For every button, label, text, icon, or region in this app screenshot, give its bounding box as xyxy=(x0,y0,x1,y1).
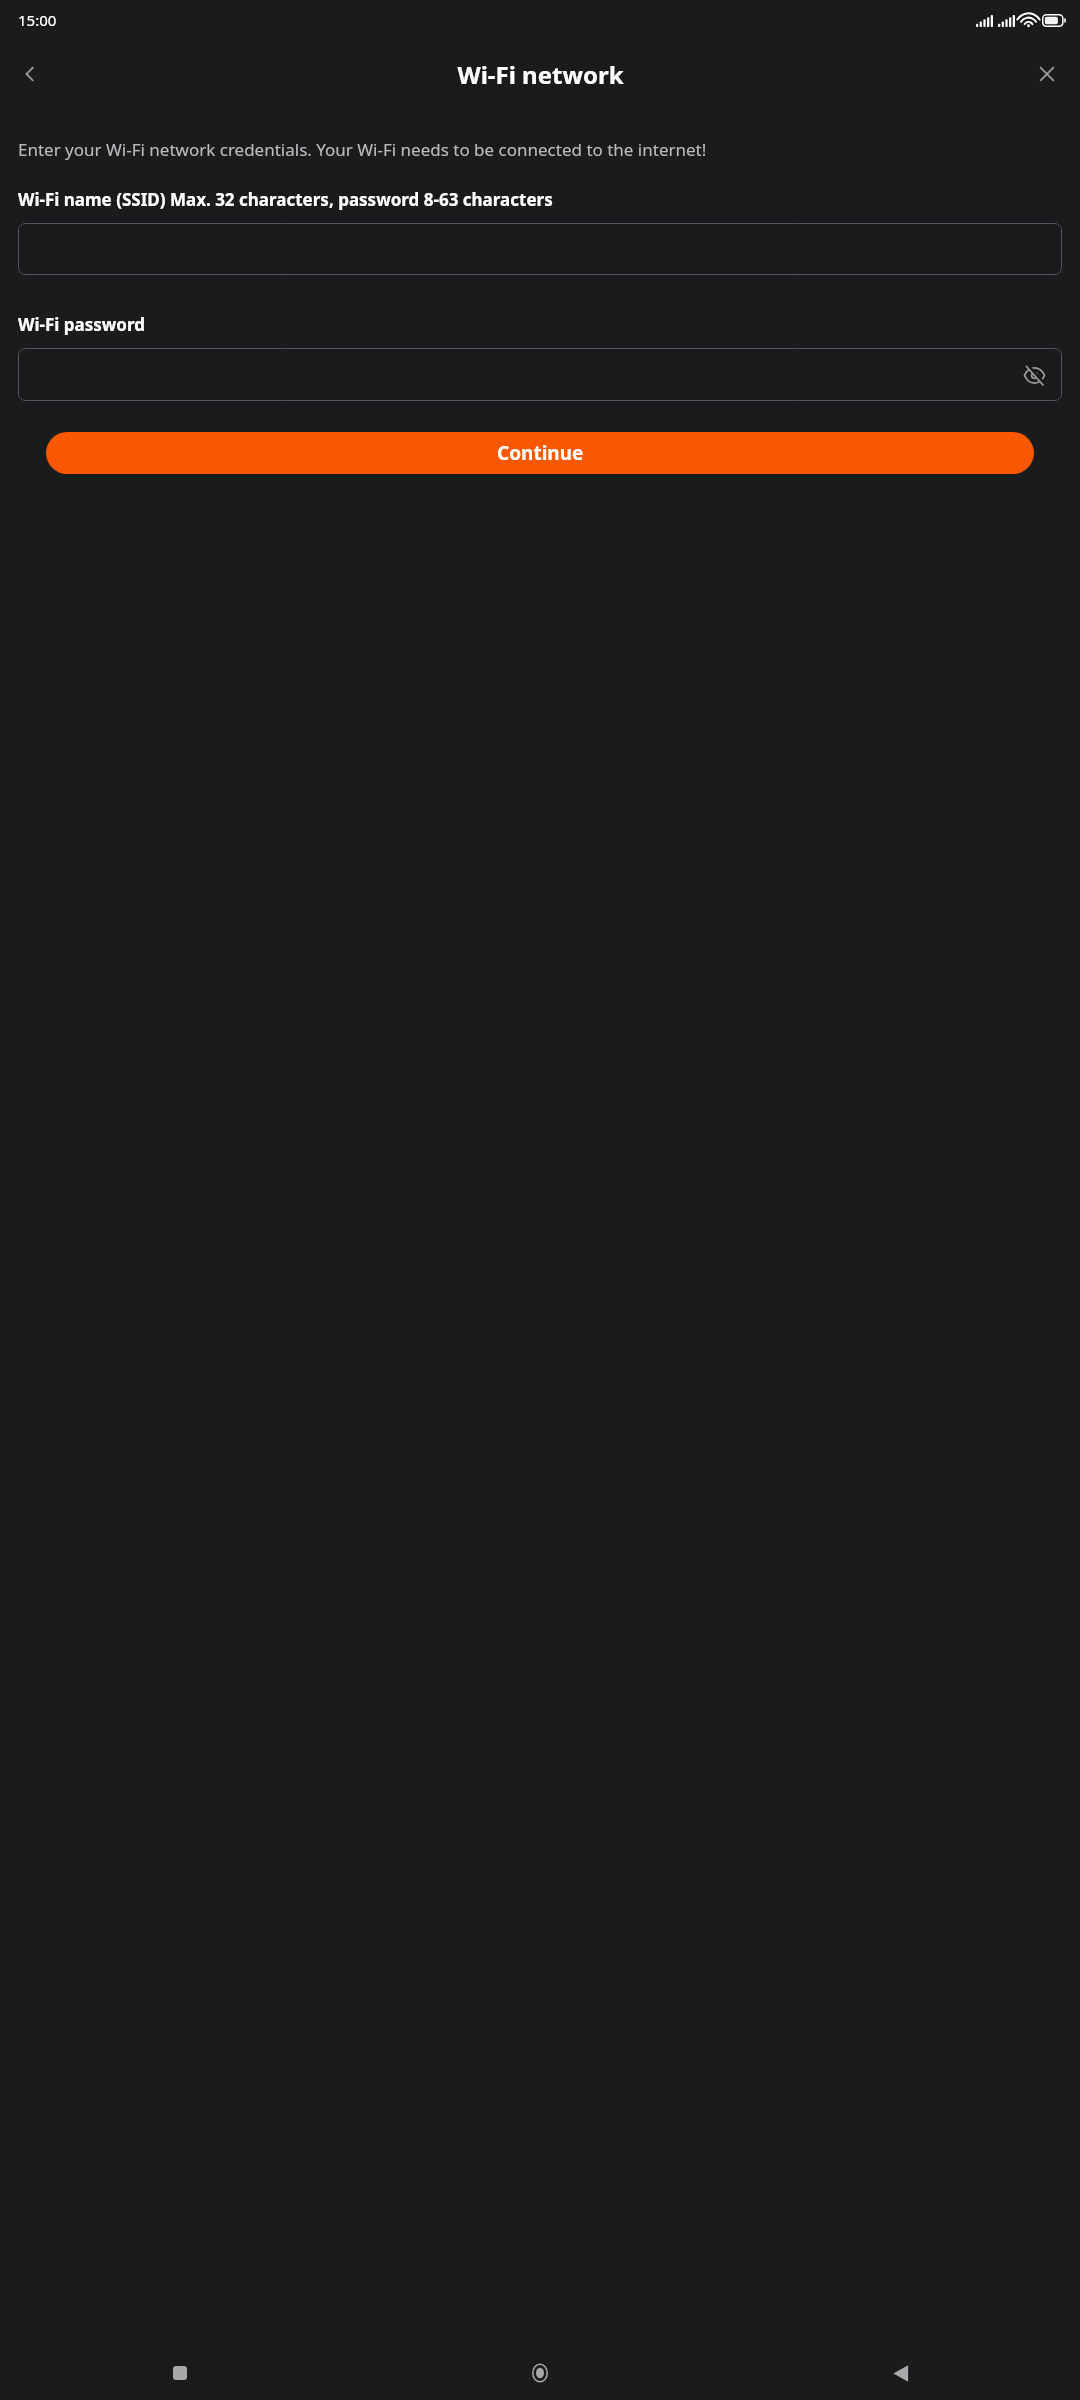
staticText: Continue xyxy=(497,440,584,466)
staticText: Wi-Fi name (SSID) Max. 32 characters, pa… xyxy=(18,188,553,211)
button[interactable]: Show password xyxy=(1014,355,1054,395)
button[interactable]: Wi-Fi name input xyxy=(18,223,1062,275)
button[interactable]: Back xyxy=(720,2346,1080,2400)
staticText: Wi-Fi network xyxy=(457,58,624,91)
staticText: Wi-Fi password xyxy=(18,313,145,336)
button[interactable]: Close xyxy=(1023,50,1071,98)
button[interactable]: Back xyxy=(6,50,54,98)
button[interactable]: Home xyxy=(360,2346,720,2400)
staticText: 15:00 xyxy=(18,10,57,30)
staticText: Enter your Wi-Fi network credentials. Yo… xyxy=(18,138,707,161)
button[interactable]: Continue xyxy=(46,432,1034,474)
button[interactable]: Recents xyxy=(0,2346,360,2400)
button[interactable]: Wi-Fi password input xyxy=(18,348,1062,401)
